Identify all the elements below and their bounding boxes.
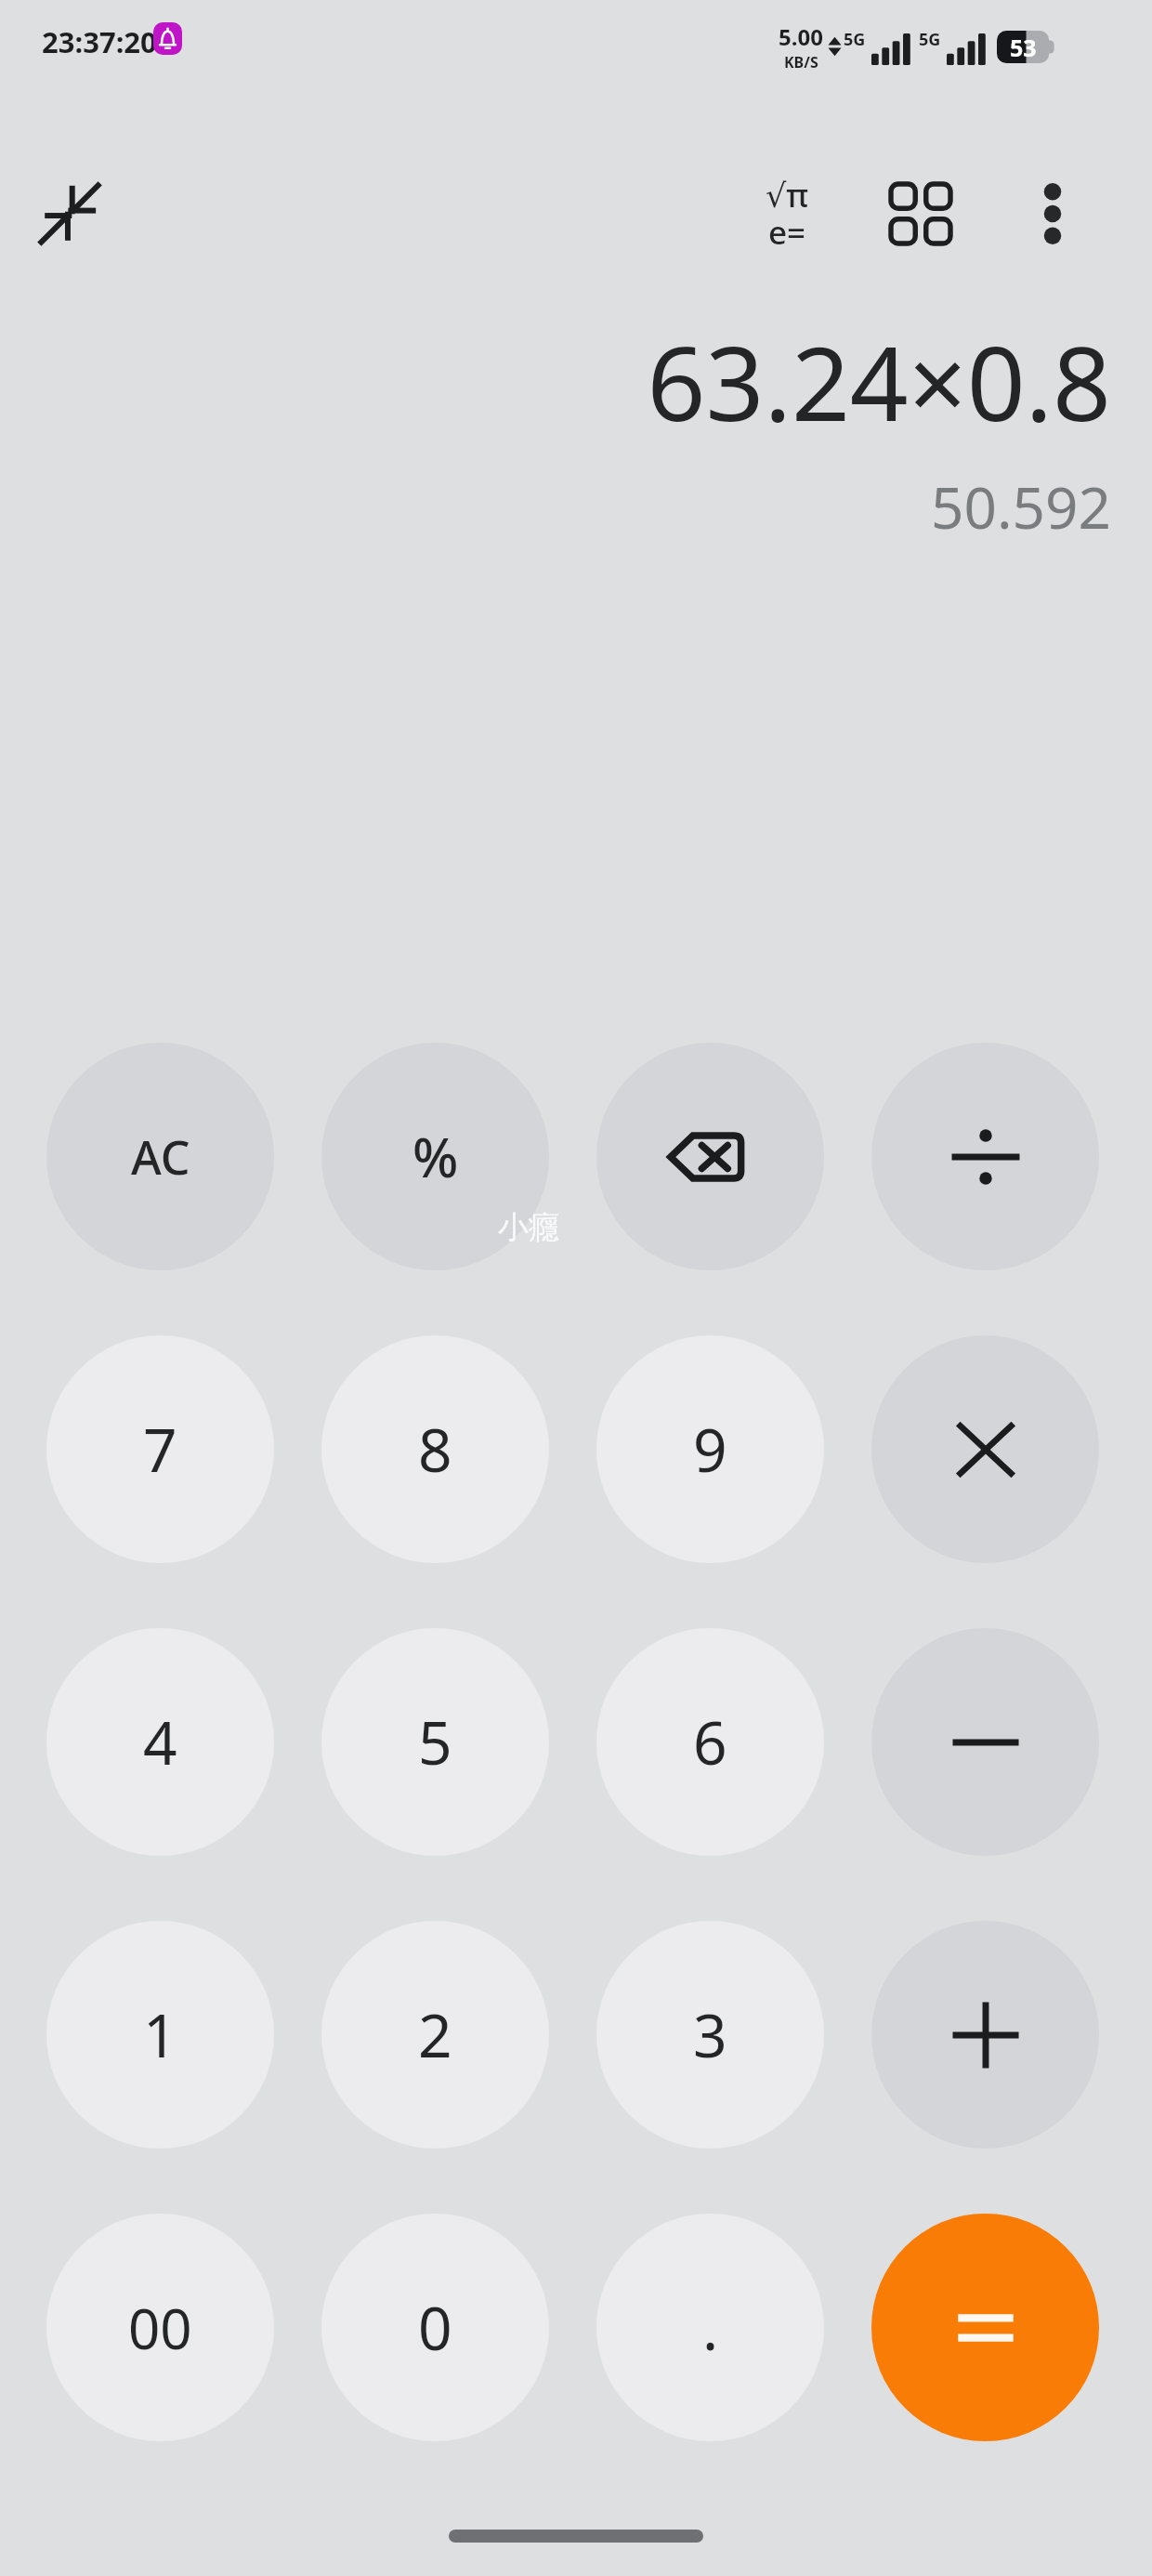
button[interactable]: 5 (321, 1628, 549, 1856)
staticText: 63.24×0.8 (647, 311, 1111, 451)
button[interactable]: 9 (596, 1335, 824, 1563)
staticText: 8 (418, 1409, 452, 1490)
staticText: 5G (844, 28, 866, 51)
button[interactable]: Multiply (871, 1335, 1099, 1563)
button[interactable]: 4 (46, 1628, 274, 1856)
button[interactable]: 1 (46, 1921, 274, 2149)
button[interactable]: 0 (321, 2214, 549, 2441)
button[interactable]: History (866, 160, 975, 268)
staticText: 00 (128, 2290, 192, 2366)
staticText: e= (768, 210, 806, 255)
button[interactable]: Backspace (596, 1043, 824, 1270)
button[interactable]: 8 (321, 1335, 549, 1563)
staticText: 5.00 (779, 21, 823, 52)
button[interactable]: % (321, 1043, 549, 1270)
staticText: 23:37:20 (42, 22, 157, 61)
button[interactable]: 6 (596, 1628, 824, 1856)
button[interactable]: More options (998, 160, 1107, 268)
button[interactable]: Equals (871, 2214, 1099, 2441)
button[interactable]: 3 (596, 1921, 824, 2149)
staticText: 50.592 (931, 467, 1111, 545)
staticText: KB/S (784, 52, 818, 72)
staticText: 3 (693, 1994, 727, 2075)
button[interactable]: 7 (46, 1335, 274, 1563)
button[interactable]: Plus (871, 1921, 1099, 2149)
staticText: 9 (693, 1409, 727, 1490)
button[interactable]: AC (46, 1043, 274, 1270)
staticText: √π (766, 173, 809, 217)
button[interactable]: Divide (871, 1043, 1099, 1270)
button[interactable]: . (596, 2214, 824, 2441)
staticText: 4 (143, 1702, 177, 1782)
staticText: 6 (693, 1702, 727, 1782)
staticText: 0 (418, 2287, 452, 2368)
staticText: 53 (1010, 32, 1037, 63)
button[interactable]: 2 (321, 1921, 549, 2149)
staticText: 5 (418, 1702, 452, 1782)
button[interactable]: Scientific mode (732, 160, 842, 268)
staticText: . (702, 2287, 719, 2368)
button[interactable]: 00 (46, 2214, 274, 2441)
staticText: 5G (919, 28, 941, 51)
staticText: 1 (143, 1994, 177, 2075)
button[interactable]: Collapse (15, 160, 124, 268)
staticText: 7 (143, 1409, 177, 1490)
staticText: 小癮 (498, 1208, 559, 1247)
staticText: 2 (418, 1994, 452, 2075)
button[interactable]: Minus (871, 1628, 1099, 1856)
staticText: AC (131, 1125, 190, 1189)
staticText: % (412, 1120, 459, 1193)
